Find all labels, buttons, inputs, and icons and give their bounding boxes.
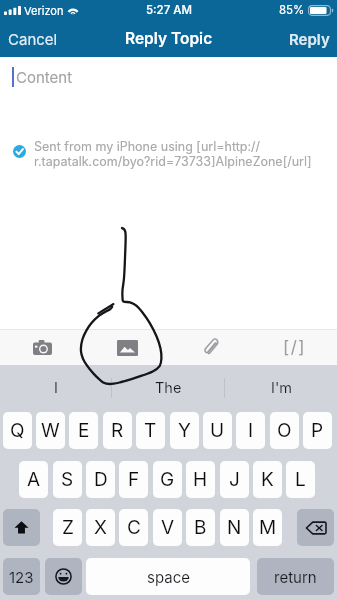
staticText: A [27, 468, 41, 491]
staticText: W [41, 419, 60, 442]
staticText: Y [178, 419, 191, 442]
staticText: S [61, 468, 74, 491]
button[interactable]: T [136, 412, 165, 449]
staticText: The [155, 379, 182, 397]
button[interactable]: Reply [277, 22, 337, 56]
button[interactable]: I [236, 412, 265, 449]
button[interactable]: Backspace [297, 509, 334, 546]
staticText: T [144, 419, 157, 442]
button[interactable]: Emoji [45, 558, 82, 595]
staticText: Q [10, 419, 25, 442]
button[interactable]: Attach file [169, 330, 253, 365]
staticText: Reply Topic [125, 29, 213, 48]
button[interactable]: Shift [3, 509, 40, 546]
staticText: 85% [279, 3, 305, 17]
staticText: U [210, 419, 225, 442]
button[interactable]: Q [3, 412, 32, 449]
staticText: P [311, 419, 324, 442]
button[interactable]: V [153, 509, 182, 546]
button[interactable]: Y [170, 412, 199, 449]
button[interactable]: B [186, 509, 215, 546]
staticText: X [94, 516, 107, 539]
staticText: V [161, 516, 175, 539]
button[interactable]: R [103, 412, 132, 449]
staticText: B [194, 516, 207, 539]
button[interactable]: I'm [225, 365, 337, 411]
staticText: 5:27 AM [146, 3, 192, 17]
staticText: Z [62, 516, 74, 539]
staticText: I [54, 379, 58, 397]
button[interactable]: K [253, 461, 282, 498]
button[interactable]: Camera [0, 330, 85, 365]
staticText: K [261, 468, 274, 491]
button[interactable]: L [286, 461, 315, 498]
staticText: return [274, 568, 317, 586]
button[interactable]: C [119, 509, 148, 546]
button[interactable]: return [257, 558, 334, 595]
button[interactable]: Cancel [0, 22, 70, 56]
staticText: C [127, 516, 141, 539]
staticText: G [160, 468, 175, 491]
button[interactable]: G [153, 461, 182, 498]
button[interactable]: D [86, 461, 115, 498]
button[interactable]: Photo library [85, 330, 169, 365]
staticText: J [229, 468, 240, 491]
button[interactable]: N [220, 509, 249, 546]
staticText: D [94, 468, 108, 491]
staticText: [/] [283, 337, 307, 358]
staticText: I'm [271, 379, 292, 397]
staticText: Reply [289, 30, 330, 48]
button[interactable]: H [186, 461, 215, 498]
staticText: I [248, 419, 254, 442]
button[interactable]: E [69, 412, 98, 449]
staticText: 123 [9, 568, 34, 586]
button[interactable]: The [112, 365, 224, 411]
button[interactable]: S [53, 461, 82, 498]
staticText: Verizon [24, 4, 64, 17]
staticText: E [78, 419, 90, 442]
button[interactable]: O [270, 412, 299, 449]
button[interactable]: space [86, 558, 250, 595]
button[interactable]: Z [53, 509, 82, 546]
staticText: H [193, 468, 208, 491]
staticText: L [295, 468, 306, 491]
staticText: Cancel [8, 30, 58, 48]
button[interactable]: I [0, 365, 111, 411]
button[interactable]: M [253, 509, 282, 546]
button[interactable]: X [86, 509, 115, 546]
staticText: O [277, 419, 292, 442]
staticText: M [259, 516, 277, 539]
staticText: F [128, 468, 140, 491]
button[interactable]: 123 [3, 558, 40, 595]
button[interactable]: P [303, 412, 332, 449]
button[interactable]: F [119, 461, 148, 498]
staticText: Content [16, 68, 73, 86]
button[interactable]: A [19, 461, 48, 498]
button[interactable]: J [220, 461, 249, 498]
button[interactable]: W [36, 412, 65, 449]
button[interactable]: U [203, 412, 232, 449]
staticText: Sent from my iPhone using [url=http:// r… [34, 139, 312, 169]
staticText: space [147, 568, 190, 586]
button[interactable]: Insert code [253, 330, 337, 365]
staticText: R [111, 419, 124, 442]
staticText: N [227, 516, 242, 539]
